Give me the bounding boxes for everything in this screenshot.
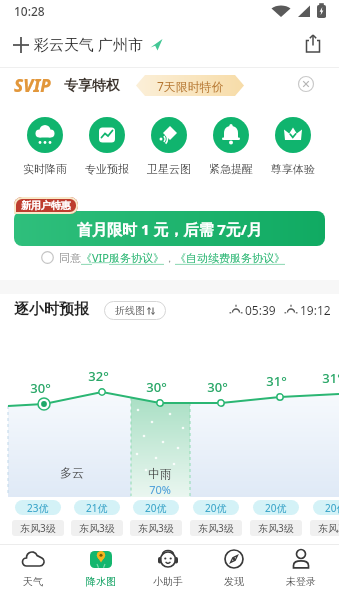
button[interactable]: 未登录 [275, 546, 327, 601]
staticText: 紧急提醒 [209, 162, 253, 176]
button[interactable] [301, 32, 325, 56]
staticText: 小助手 [153, 575, 183, 588]
button[interactable] [151, 117, 187, 153]
staticText: 20优 [265, 501, 287, 515]
staticText: 20优 [325, 501, 339, 515]
staticText: 降水图 [86, 575, 116, 588]
staticText: 多云 [60, 465, 84, 480]
staticText: 《自动续费服务协议》 [175, 251, 285, 265]
button[interactable] [213, 117, 249, 153]
staticText: 东风3级 [318, 521, 339, 535]
staticText: 实时降雨 [23, 162, 67, 176]
button[interactable] [297, 75, 315, 93]
staticText: ， [164, 251, 175, 265]
staticText: 东风3级 [20, 521, 56, 535]
staticText: 同意 [59, 251, 81, 265]
button[interactable]: 发现 [208, 546, 260, 601]
staticText: 新用户特惠 [21, 199, 71, 212]
staticText: 中雨 [148, 466, 172, 481]
staticText: 未登录 [286, 575, 316, 588]
staticText: 逐小时预报 [14, 300, 89, 319]
staticText: 彩云天气 广州市 [34, 34, 143, 54]
staticText: 70% [149, 482, 171, 497]
staticText: 20优 [205, 501, 227, 515]
button[interactable]: 降水图 [75, 546, 127, 601]
staticText: 30° [30, 379, 51, 397]
button[interactable]: 折线图 [104, 301, 166, 320]
button[interactable] [8, 32, 34, 58]
button[interactable] [89, 117, 125, 153]
staticText: 卫星云图 [147, 162, 191, 176]
staticText: 23优 [27, 501, 49, 515]
button[interactable]: 《自动续费服务协议》 [175, 251, 285, 265]
staticText: 东风3级 [79, 521, 115, 535]
staticText: 发现 [224, 575, 244, 588]
staticText: 专业预报 [85, 162, 129, 176]
staticText: 东风3级 [198, 521, 234, 535]
staticText: 首月限时 1 元，后需 7元/月 [77, 219, 263, 239]
staticText: 东风3级 [138, 521, 174, 535]
button[interactable] [275, 117, 311, 153]
staticText: 折线图 [115, 304, 145, 317]
staticText: 《VIP服务协议》 [81, 250, 164, 265]
staticText: 05:39 [245, 302, 276, 318]
staticText: 31° [266, 372, 287, 390]
staticText: 31° [322, 369, 339, 387]
staticText: 30° [146, 378, 167, 396]
staticText: 21优 [86, 501, 108, 515]
staticText: 东风3级 [258, 521, 294, 535]
staticText: 32° [88, 367, 109, 385]
button[interactable] [27, 117, 63, 153]
staticText: 19:12 [300, 302, 331, 318]
staticText: SVIP [14, 74, 51, 97]
staticText: 10:28 [14, 3, 45, 19]
staticText: 7天限时特价 [157, 78, 224, 94]
button[interactable]: 天气 [7, 546, 59, 601]
staticText: 天气 [23, 575, 43, 588]
button[interactable]: 小助手 [142, 546, 194, 601]
staticText: 20优 [145, 501, 167, 515]
button[interactable]: 首月限时 1 元，后需 7元/月 [14, 211, 325, 246]
staticText: 尊享体验 [271, 162, 315, 176]
staticText: 30° [207, 378, 228, 396]
button[interactable]: 《VIP服务协议》 [81, 250, 164, 265]
staticText: 专享特权 [64, 77, 120, 95]
